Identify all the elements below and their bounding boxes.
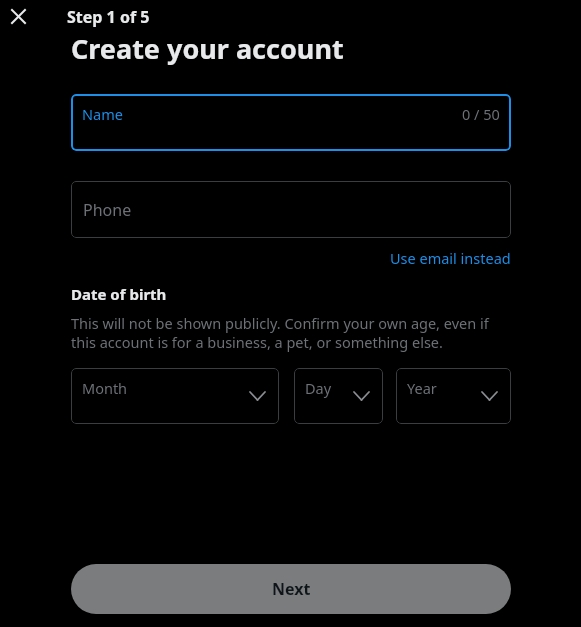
button[interactable]: Close [5,3,32,30]
staticText: Month [82,378,128,398]
button[interactable]: Name [71,94,511,151]
button[interactable]: Use email instead [390,246,511,270]
staticText: Create your account [71,30,344,67]
staticText: Year [407,378,437,398]
button[interactable]: Phone [71,181,511,238]
button[interactable]: Day [294,368,383,424]
staticText: Step 1 of 5 [67,6,150,28]
button[interactable]: Next [71,564,511,614]
staticText: Next [272,578,311,600]
button[interactable]: Year [396,368,511,424]
staticText: Day [305,378,332,398]
staticText: This will not be shown publicly. Confirm… [71,313,511,352]
staticText: Use email instead [390,248,511,268]
staticText: Name [82,104,123,124]
staticText: Date of birth [71,284,167,304]
staticText: 0 / 50 [462,104,500,124]
staticText: Phone [83,199,132,221]
button[interactable]: Month [71,368,279,424]
